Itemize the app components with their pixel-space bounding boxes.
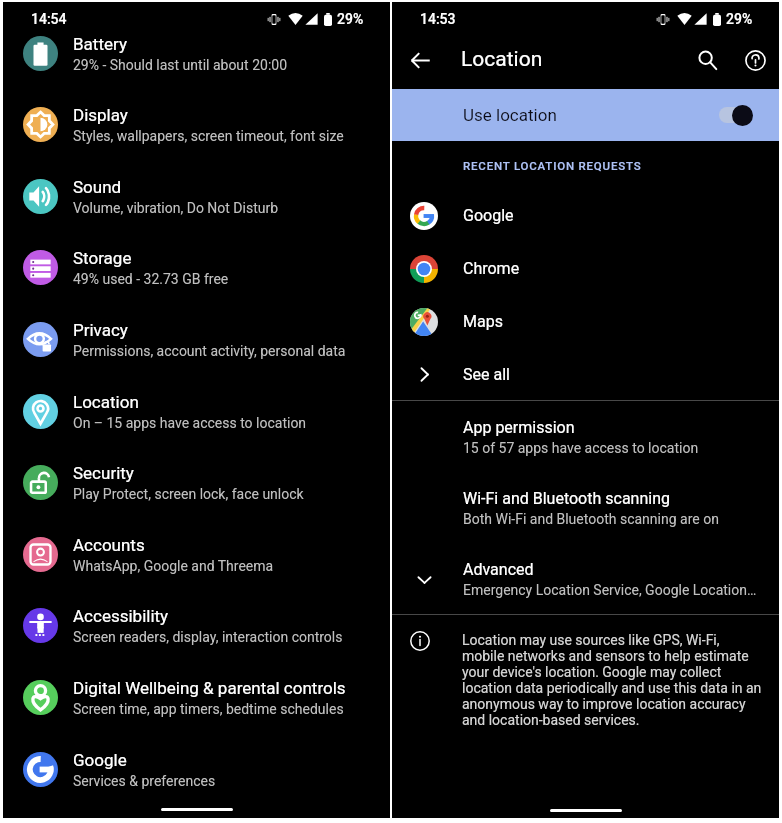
staticText: WhatsApp, Google and Threema <box>73 558 274 574</box>
staticText: Styles, wallpapers, screen timeout, font… <box>73 128 344 144</box>
staticText: Privacy <box>73 320 128 340</box>
button[interactable]: Security <box>3 447 390 518</box>
staticText: 14:54 <box>31 11 67 27</box>
staticText: 29% <box>726 11 753 27</box>
button[interactable]: Help <box>731 36 779 84</box>
staticText: Chrome <box>463 259 520 278</box>
staticText: 15 of 57 apps have access to location <box>463 440 699 456</box>
button[interactable]: See all <box>392 348 779 400</box>
staticText: 49% used - 32.73 GB free <box>73 271 229 287</box>
button[interactable]: App permission <box>392 401 779 472</box>
staticText: Emergency Location Service, Google Locat… <box>463 582 757 598</box>
staticText: Advanced <box>463 560 534 579</box>
staticText: Wi-Fi and Bluetooth scanning <box>463 489 670 508</box>
staticText: Both Wi-Fi and Bluetooth scanning are on <box>463 511 719 527</box>
staticText: Accounts <box>73 535 145 555</box>
staticText: Screen time, app timers, bedtime schedul… <box>73 701 344 717</box>
staticText: Location <box>461 47 543 72</box>
button[interactable]: Accessibility <box>3 590 390 661</box>
button[interactable]: Maps <box>392 295 779 348</box>
button[interactable]: Storage <box>3 232 390 303</box>
staticText: Location <box>73 392 139 412</box>
staticText: Play Protect, screen lock, face unlock <box>73 486 304 502</box>
button[interactable]: Google <box>392 189 779 242</box>
staticText: 29% - Should last until about 20:00 <box>73 57 288 73</box>
staticText: Sound <box>73 177 122 197</box>
staticText: Digital Wellbeing & parental controls <box>73 678 346 698</box>
button[interactable]: Sound <box>3 160 390 232</box>
staticText: App permission <box>463 418 575 437</box>
button[interactable]: Use location <box>392 89 779 141</box>
staticText: 29% <box>337 11 364 27</box>
staticText: Permissions, account activity, personal … <box>73 343 346 359</box>
staticText: Screen readers, display, interaction con… <box>73 629 343 645</box>
staticText: Security <box>73 463 134 483</box>
button[interactable]: Google <box>3 733 390 805</box>
staticText: Volume, vibration, Do Not Disturb <box>73 200 279 216</box>
button[interactable]: Battery <box>3 17 390 89</box>
button[interactable]: Location <box>3 375 390 447</box>
button[interactable]: Privacy <box>3 303 390 375</box>
staticText: 14:53 <box>420 11 456 27</box>
staticText: Display <box>73 105 128 125</box>
staticText: Battery <box>73 34 127 54</box>
staticText: Accessibility <box>73 606 169 626</box>
button[interactable]: Search <box>683 36 731 84</box>
button[interactable]: Back <box>396 36 444 84</box>
staticText: Location may use sources like GPS, Wi-Fi… <box>462 632 763 728</box>
staticText: Storage <box>73 248 132 268</box>
staticText: Google <box>73 750 127 770</box>
button[interactable]: Accounts <box>3 518 390 590</box>
button[interactable]: Chrome <box>392 242 779 295</box>
staticText: Maps <box>463 312 503 331</box>
staticText: See all <box>463 365 510 384</box>
button[interactable]: Wi-Fi and Bluetooth scanning <box>392 472 779 544</box>
staticText: Services & preferences <box>73 773 216 789</box>
staticText: On – 15 apps have access to location <box>73 415 307 431</box>
staticText: RECENT LOCATION REQUESTS <box>463 159 642 172</box>
button[interactable]: Digital Wellbeing & parental controls <box>3 661 390 733</box>
staticText: Use location <box>463 105 557 125</box>
button[interactable]: Display <box>3 89 390 160</box>
button[interactable]: Advanced <box>392 544 779 614</box>
staticText: Google <box>463 206 514 225</box>
